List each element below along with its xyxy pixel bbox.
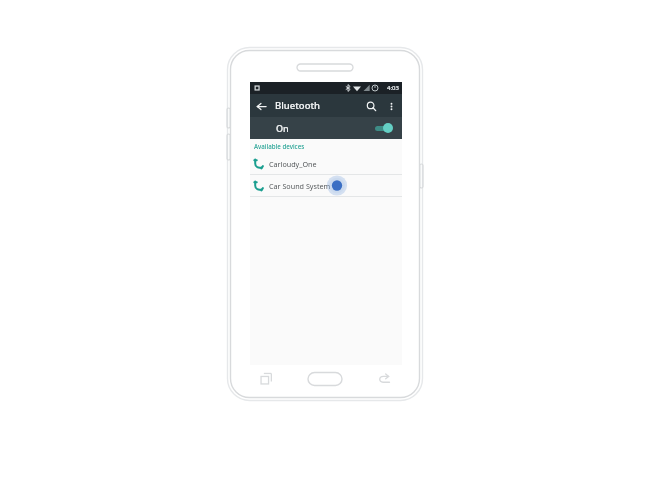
staticText: Bluetooth xyxy=(275,99,360,112)
button[interactable]: Search xyxy=(360,95,382,117)
staticText: 4:03 xyxy=(387,84,399,92)
button[interactable]: Back xyxy=(250,95,272,117)
staticText: On xyxy=(276,122,375,134)
staticText: Car Sound System xyxy=(269,181,331,191)
button[interactable]: Car Sound System xyxy=(250,175,402,196)
button[interactable]: More options xyxy=(382,97,400,115)
button[interactable]: Carloudy_One xyxy=(250,153,402,174)
other: Bluetooth on xyxy=(375,123,392,133)
staticText: Carloudy_One xyxy=(269,159,317,169)
staticText: Available devices xyxy=(254,142,305,150)
button[interactable]: On xyxy=(250,117,402,139)
